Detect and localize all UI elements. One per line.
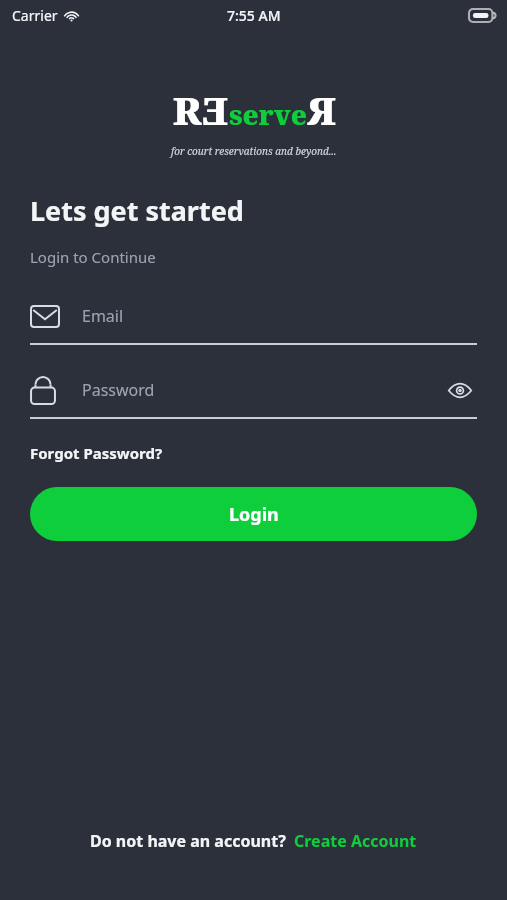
staticText: 7:55 AM <box>227 6 281 25</box>
button[interactable]: Create Account <box>294 830 417 852</box>
staticText: Email <box>82 305 477 327</box>
staticText: Create Account <box>294 830 417 852</box>
staticText: R <box>173 84 202 136</box>
button[interactable]: Email <box>30 299 477 345</box>
staticText: R <box>307 84 336 136</box>
staticText: Lets get started <box>30 192 244 229</box>
button[interactable]: Show password <box>443 378 477 403</box>
staticText: Do not have an account? <box>90 830 286 852</box>
staticText: E <box>202 84 228 136</box>
other: Email <box>30 305 68 328</box>
staticText: Password <box>82 379 443 401</box>
staticText: Login <box>229 502 279 527</box>
button[interactable]: Login <box>30 487 477 541</box>
staticText: for court reservations and beyond... <box>171 144 337 158</box>
other: Password <box>30 375 68 405</box>
staticText: Carrier <box>12 6 58 25</box>
staticText: Login to Continue <box>30 247 156 267</box>
staticText: serve <box>229 96 307 133</box>
button[interactable]: Password <box>30 373 477 419</box>
button[interactable]: Forgot Password? <box>30 441 163 465</box>
staticText: Forgot Password? <box>30 443 163 463</box>
